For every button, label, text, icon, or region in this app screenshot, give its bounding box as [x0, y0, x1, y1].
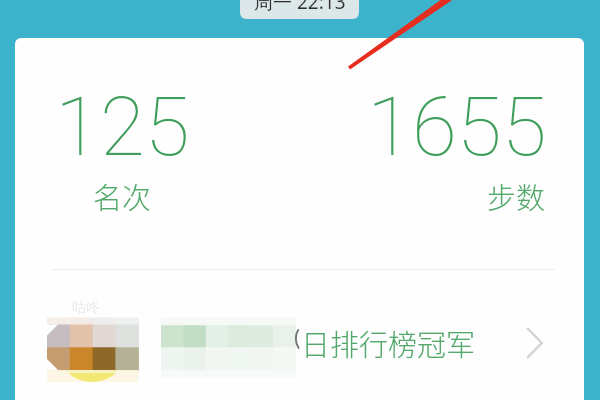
staticText: 1655	[367, 79, 547, 175]
staticText: 咕咚	[72, 299, 100, 317]
staticText: 125	[55, 79, 190, 175]
other: Open daily ranking	[520, 326, 551, 360]
button[interactable]: 咕咚	[15, 290, 584, 400]
button[interactable]: 周一 22:13	[240, 0, 359, 19]
staticText: 步数	[487, 175, 546, 217]
staticText: 名次	[93, 175, 152, 217]
staticText: 日排行榜冠军	[301, 322, 476, 364]
staticText: 周一 22:13	[254, 0, 346, 15]
